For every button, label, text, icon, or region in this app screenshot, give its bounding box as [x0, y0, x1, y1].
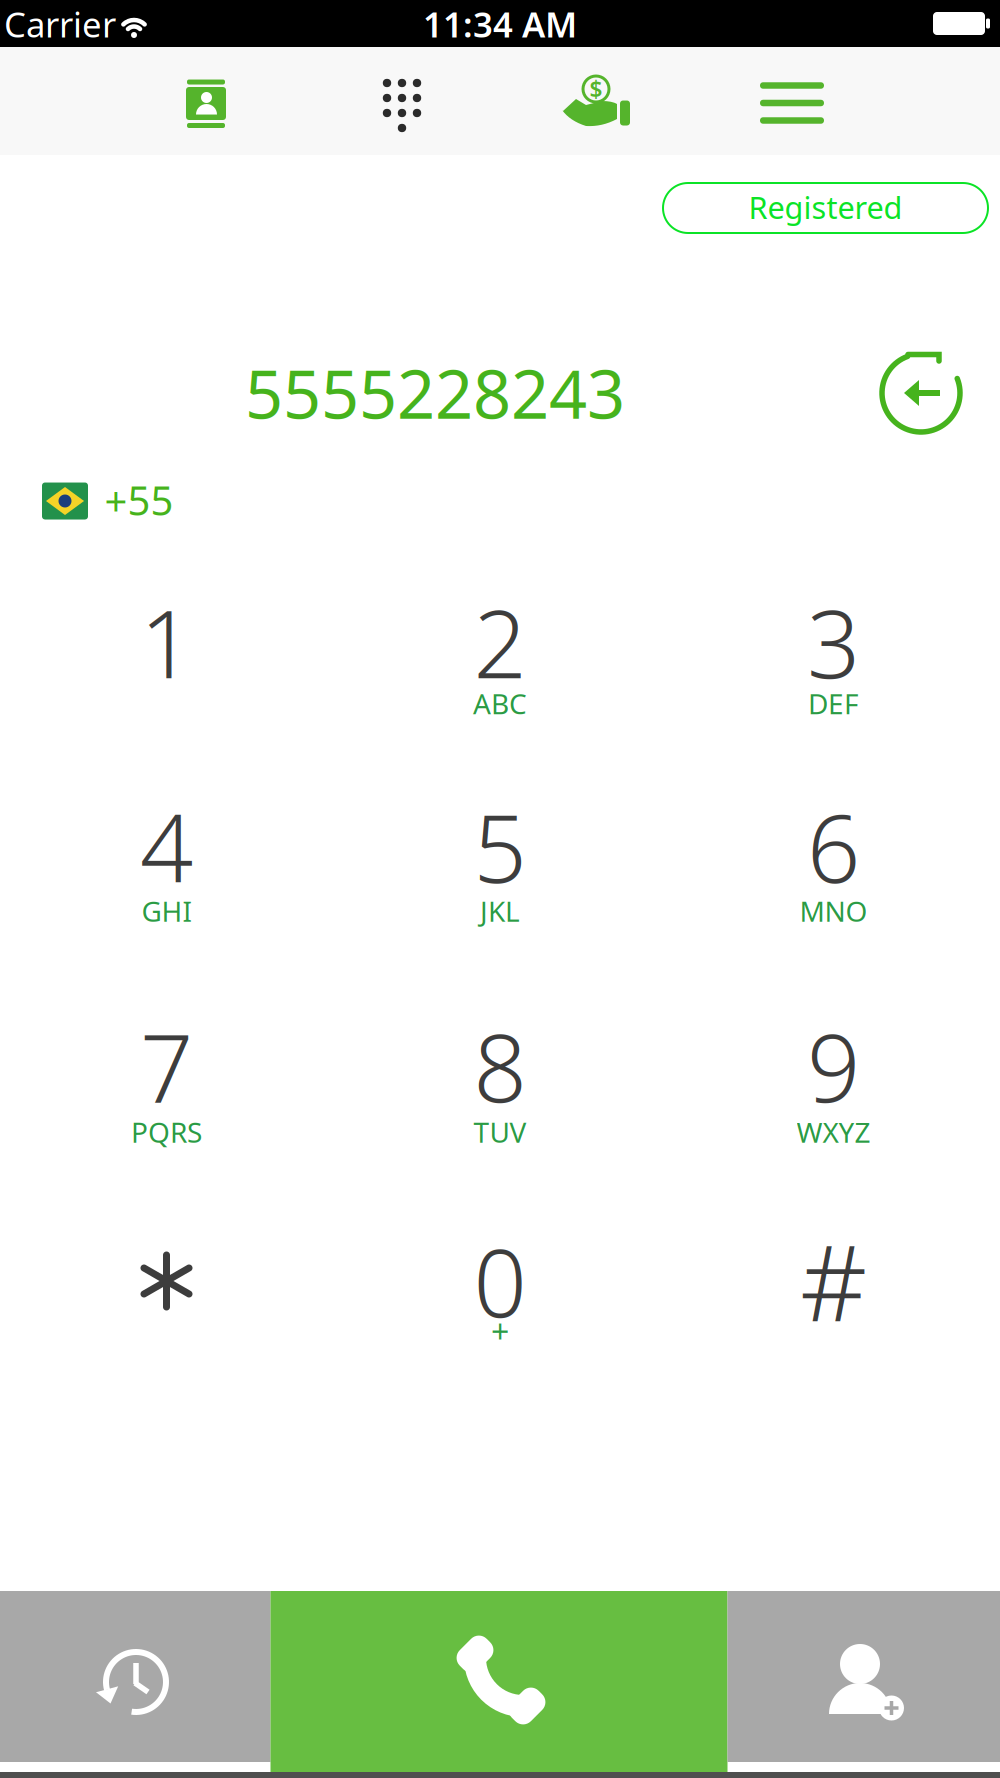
staticText: MNO — [799, 892, 867, 930]
button[interactable]: 0 — [333, 1211, 666, 1401]
staticText: JKL — [480, 892, 520, 930]
button[interactable]: 4 — [0, 776, 333, 966]
button[interactable]: Menu — [742, 53, 842, 153]
staticText: Registered — [748, 187, 902, 227]
button[interactable]: 7 — [0, 996, 333, 1186]
staticText: 4 — [140, 784, 193, 908]
button[interactable]: Call history — [0, 1591, 270, 1762]
button[interactable]: 5 — [333, 776, 666, 966]
button[interactable]: * — [0, 1211, 333, 1401]
staticText: PQRS — [131, 1113, 202, 1151]
staticText: GHI — [141, 892, 191, 930]
button[interactable]: Registered — [663, 183, 988, 233]
staticText: Carrier — [4, 1, 116, 47]
staticText: 11:34 AM — [423, 1, 577, 47]
button[interactable]: Keypad — [352, 53, 452, 153]
staticText: +55 — [104, 473, 173, 526]
staticText: 2 — [473, 580, 526, 704]
button[interactable]: Contacts — [156, 53, 256, 153]
staticText: 9 — [807, 1004, 860, 1128]
button[interactable]: 6 — [667, 776, 1000, 966]
staticText: 8 — [473, 1004, 526, 1128]
button[interactable]: 3 — [667, 572, 1000, 762]
button[interactable]: # — [667, 1211, 1000, 1401]
staticText: 0 — [473, 1219, 526, 1343]
button[interactable]: Call — [270, 1591, 727, 1772]
staticText: WXYZ — [796, 1113, 870, 1151]
staticText: DEF — [808, 685, 859, 722]
staticText: # — [800, 1212, 867, 1350]
button[interactable]: 2 — [333, 572, 666, 762]
staticText: 7 — [140, 1004, 193, 1128]
staticText: 3 — [807, 580, 860, 704]
button[interactable]: Delete — [866, 338, 976, 448]
staticText: + — [491, 1310, 509, 1352]
staticText: 5555228243 — [245, 349, 625, 437]
button[interactable]: 1 — [0, 572, 333, 762]
staticText: 6 — [807, 784, 860, 908]
button[interactable]: Add contact — [727, 1591, 1000, 1762]
button[interactable]: Rates — [546, 53, 646, 153]
staticText: $ — [589, 74, 602, 104]
button[interactable]: Country code +55 — [30, 471, 190, 531]
staticText: 5 — [473, 784, 526, 908]
staticText: ABC — [473, 685, 527, 722]
staticText: TUV — [473, 1113, 526, 1151]
button[interactable]: 8 — [333, 996, 666, 1186]
button[interactable]: 9 — [667, 996, 1000, 1186]
staticText: 1 — [140, 580, 193, 704]
